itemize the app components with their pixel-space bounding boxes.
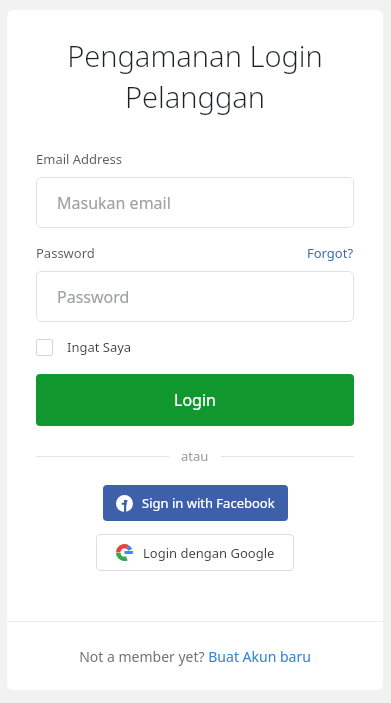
staticText: Forgot? bbox=[307, 244, 354, 262]
button[interactable]: Login dengan Google bbox=[96, 534, 294, 571]
button[interactable]: Sign in with Facebook bbox=[103, 485, 288, 521]
staticText: atau bbox=[181, 447, 209, 465]
staticText: Login bbox=[174, 389, 216, 411]
staticText: Password bbox=[57, 286, 130, 308]
button[interactable]: Not a member yet? Buat Akun baru bbox=[79, 647, 311, 666]
button[interactable]: Forgot? bbox=[307, 244, 354, 262]
staticText: Password bbox=[36, 244, 95, 262]
staticText: Ingat Saya bbox=[67, 338, 132, 356]
button[interactable]: Login bbox=[36, 374, 354, 426]
staticText: Email Address bbox=[36, 150, 122, 168]
staticText: Not a member yet? Buat Akun baru bbox=[79, 647, 311, 666]
staticText: Pengamanan Login Pelanggan bbox=[25, 36, 365, 117]
staticText: Sign in with Facebook bbox=[142, 494, 275, 512]
staticText: Masukan email bbox=[57, 192, 171, 214]
button[interactable]: Password bbox=[36, 271, 354, 322]
button[interactable]: Ingat Saya bbox=[36, 338, 132, 356]
staticText: Login dengan Google bbox=[143, 544, 275, 562]
button[interactable]: Masukan email bbox=[36, 177, 354, 228]
